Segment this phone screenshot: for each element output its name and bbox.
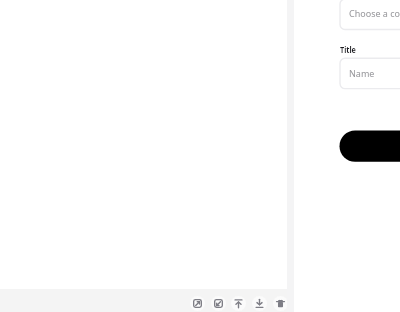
button[interactable]: Upload [231,296,246,311]
staticText: Choose a color [349,7,400,19]
button[interactable]: Download [252,296,267,311]
button[interactable] [340,130,400,162]
staticText: Title [340,44,356,55]
button[interactable]: Actual size [211,296,226,311]
staticText: Name [349,67,375,79]
button[interactable]: Choose a color [340,0,400,29]
button[interactable]: Delete [273,296,288,311]
button[interactable]: Name [340,58,400,89]
button[interactable]: Zoom to fit [190,296,205,311]
